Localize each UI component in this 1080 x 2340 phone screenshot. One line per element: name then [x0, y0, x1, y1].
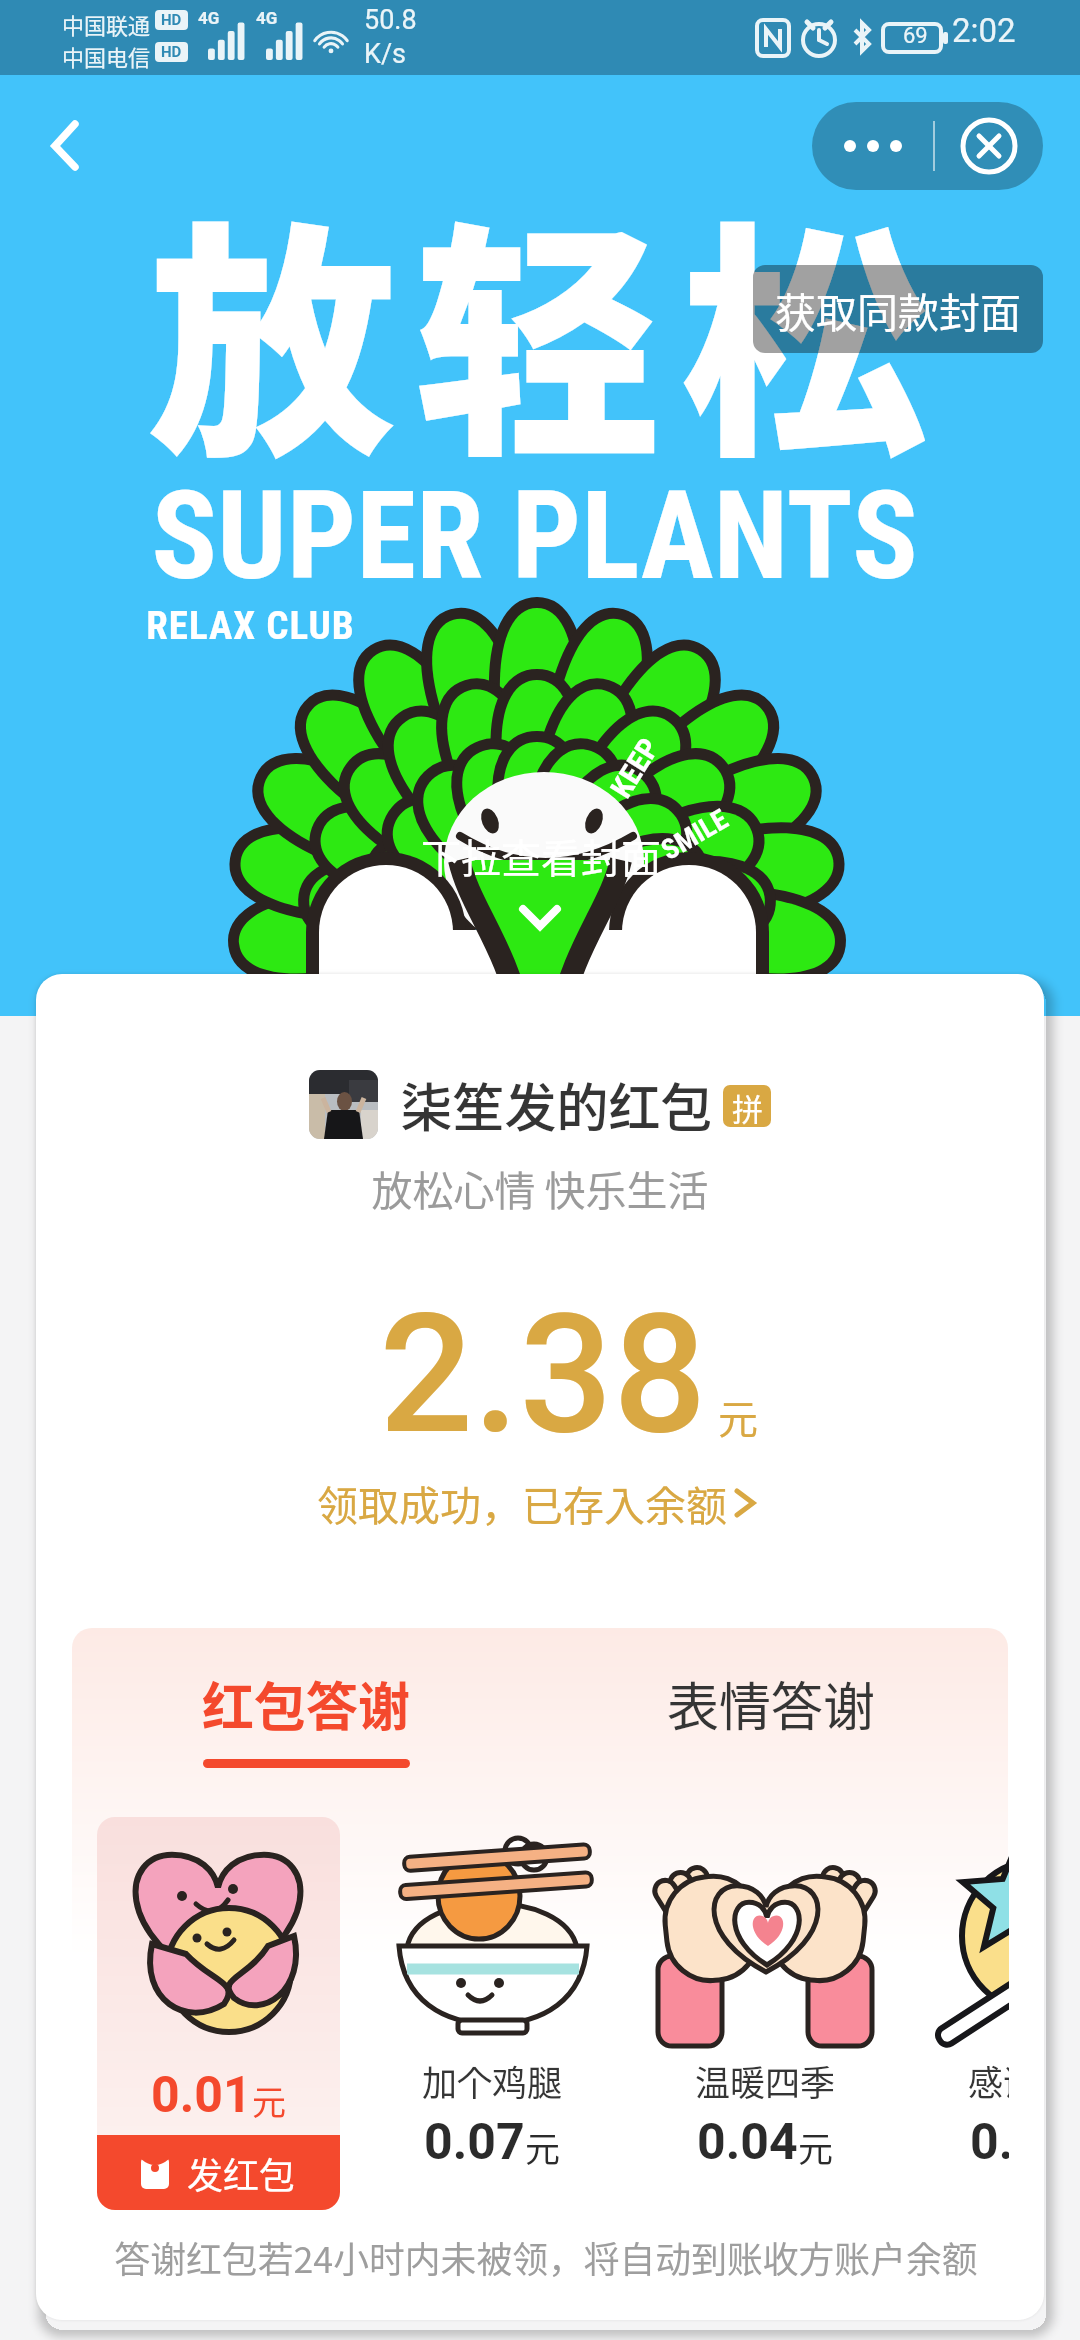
staticText: 红包答谢: [202, 1666, 411, 1741]
button[interactable]: Close: [935, 102, 1043, 190]
staticText: 拼: [732, 1085, 763, 1127]
button[interactable]: Back: [18, 104, 118, 190]
staticText: 4G: [198, 8, 220, 28]
staticText: 中国联通: [62, 8, 151, 40]
staticText: HD: [161, 11, 182, 29]
button[interactable]: 表情答谢: [611, 1638, 931, 1768]
staticText: RELAX CLUB: [146, 603, 355, 649]
button[interactable]: 发红包: [97, 1817, 340, 2210]
staticText: K/s: [364, 38, 407, 70]
staticText: 0.05: [970, 2113, 1009, 2172]
staticText: 放松心情 快乐生活: [371, 1158, 709, 1217]
staticText: SMILE: [656, 802, 734, 867]
staticText: 下拉查看封面: [421, 827, 661, 885]
button[interactable]: 温暖四季: [644, 1817, 886, 2210]
staticText: 柒笙发的红包: [400, 1067, 713, 1142]
staticText: 2:02: [952, 11, 1016, 50]
button[interactable]: 发红包: [97, 2135, 340, 2210]
staticText: HD: [161, 43, 182, 61]
staticText: 2.38: [379, 1278, 707, 1471]
button[interactable]: More options: [812, 102, 933, 190]
staticText: SUPER PLANTS: [151, 465, 918, 608]
staticText: 69: [903, 23, 928, 49]
staticText: 元: [718, 1388, 758, 1446]
button[interactable]: 领取成功，已存入余额: [300, 1467, 780, 1537]
staticText: 答谢红包若24小时内未被领，将自动到账收方账户余额: [114, 2231, 978, 2283]
staticText: 温暖四季: [695, 2055, 836, 2106]
staticText: 获取同款封面: [775, 280, 1021, 339]
staticText: 0.07: [424, 2113, 525, 2172]
button[interactable]: 加个鸡腿: [371, 1817, 613, 2210]
staticText: 50.8: [364, 4, 417, 36]
staticText: 领取成功，已存入余额: [317, 1473, 727, 1532]
staticText: 元: [252, 2076, 286, 2125]
button[interactable]: 获取同款封面: [753, 265, 1043, 353]
staticText: 元: [798, 2121, 834, 2172]
staticText: 放轻松: [148, 146, 946, 505]
staticText: 加个鸡腿: [422, 2055, 563, 2106]
staticText: 表情答谢: [667, 1666, 876, 1741]
button[interactable]: 感谢陪伴: [917, 1817, 1009, 2210]
staticText: 0.04: [697, 2113, 798, 2172]
button[interactable]: 下拉查看封面: [390, 820, 690, 950]
staticText: 中国电信: [62, 40, 151, 72]
staticText: 元: [525, 2121, 561, 2172]
staticText: KEEP: [603, 731, 667, 804]
staticText: 0.01: [151, 2066, 252, 2125]
button[interactable]: 红包答谢: [146, 1638, 466, 1768]
staticText: 感谢陪伴: [968, 2055, 1009, 2106]
staticText: 4G: [256, 8, 278, 28]
staticText: 发红包: [187, 2147, 296, 2199]
